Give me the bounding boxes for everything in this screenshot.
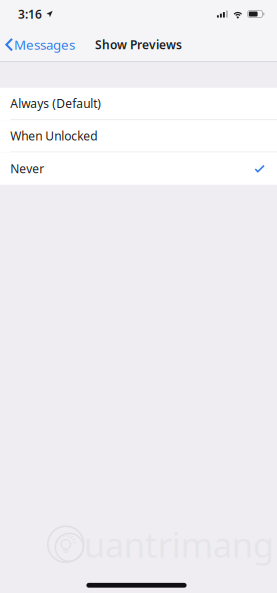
staticText: When Unlocked: [10, 128, 97, 144]
button[interactable]: Messages: [0, 32, 83, 58]
staticText: Show Previews: [95, 37, 182, 53]
button[interactable]: When Unlocked: [0, 120, 277, 152]
button[interactable]: Always (Default): [0, 88, 277, 120]
staticText: Never: [10, 161, 44, 177]
staticText: 3:16: [18, 6, 42, 22]
button[interactable]: Never: [0, 152, 277, 185]
staticText: Messages: [14, 36, 75, 53]
staticText: uantrimang: [84, 521, 274, 567]
staticText: Always (Default): [10, 95, 101, 111]
